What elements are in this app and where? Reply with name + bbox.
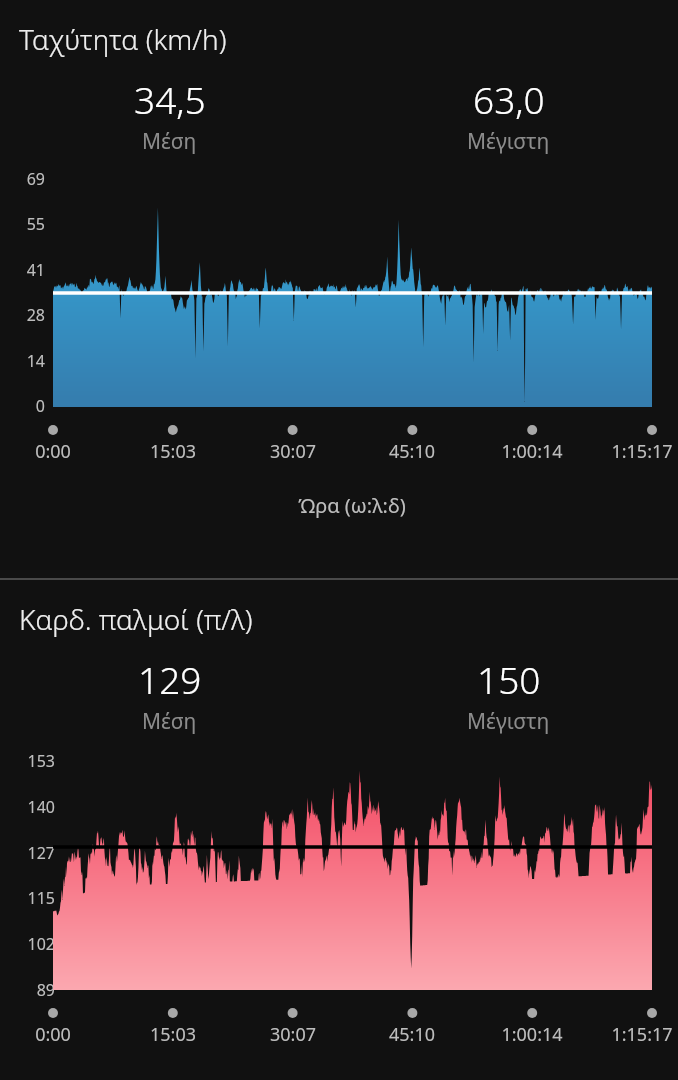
staticText: Μέση	[142, 707, 197, 736]
staticText: Μέγιστη	[467, 127, 550, 156]
staticText: 102	[15, 933, 55, 955]
staticText: 55	[5, 213, 45, 235]
staticText: Μέγιστη	[467, 707, 550, 736]
staticText: 140	[15, 796, 55, 818]
staticText: 15:03	[113, 439, 233, 464]
staticText: 127	[15, 842, 55, 864]
staticText: 1:00:14	[472, 439, 592, 464]
staticText: 153	[15, 750, 55, 772]
staticText: 45:10	[352, 1022, 472, 1047]
staticText: 1:00:14	[472, 1022, 592, 1047]
staticText: 45:10	[352, 439, 472, 464]
staticText: 0:00	[0, 1022, 113, 1047]
staticText: 1:15:17	[582, 439, 678, 464]
staticText: 14	[5, 350, 45, 372]
staticText: 1:15:17	[582, 1022, 678, 1047]
staticText: 69	[5, 168, 45, 190]
staticText: 30:07	[233, 439, 353, 464]
staticText: Μέση	[142, 127, 197, 156]
staticText: 129	[138, 654, 202, 704]
button[interactable]: Καρδ. παλμοί (π/λ)	[19, 600, 253, 638]
staticText: 0:00	[0, 439, 113, 464]
staticText: 0	[5, 395, 45, 417]
staticText: 30:07	[233, 1022, 353, 1047]
staticText: 15:03	[113, 1022, 233, 1047]
staticText: 41	[5, 259, 45, 281]
button[interactable]: Ταχύτητα (km/h)	[19, 20, 227, 58]
staticText: 150	[477, 654, 541, 704]
staticText: 89	[15, 979, 55, 1001]
staticText: 115	[15, 887, 55, 909]
staticText: 28	[5, 304, 45, 326]
staticText: Ώρα (ω:λ:δ)	[152, 492, 552, 519]
staticText: 34,5	[134, 74, 206, 124]
staticText: 63,0	[473, 74, 545, 124]
